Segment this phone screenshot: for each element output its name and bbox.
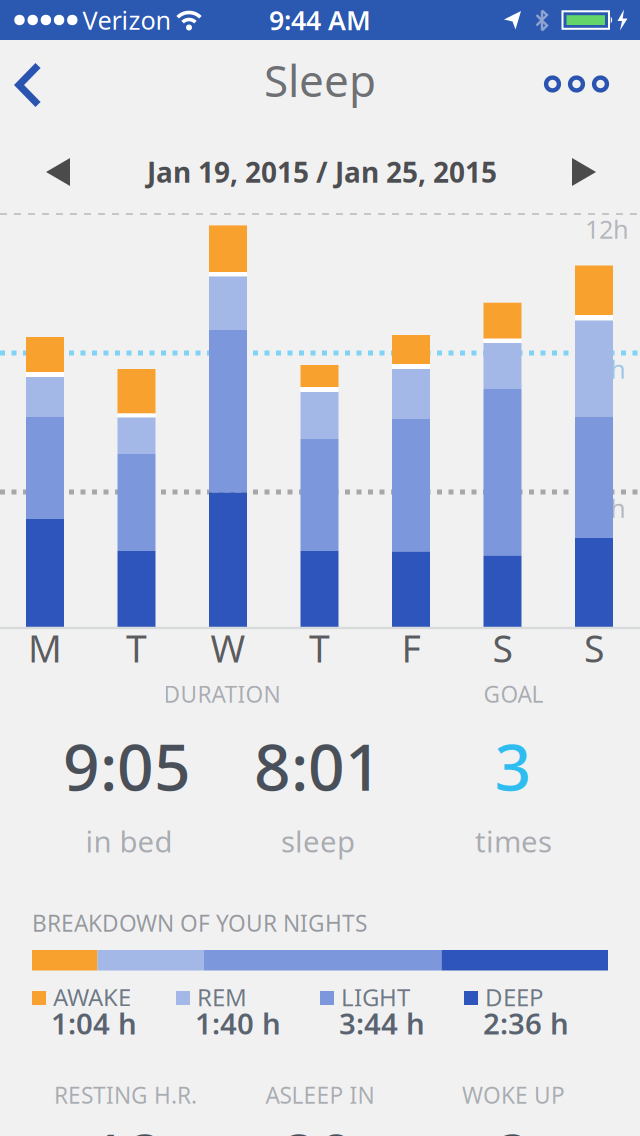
staticText: Jan 19, 2015 / Jan 25, 2015 — [147, 153, 497, 191]
staticText: T — [126, 623, 147, 673]
staticText: 2:36 h — [483, 1003, 569, 1042]
staticText: 8:01 — [254, 723, 382, 808]
staticText: S — [584, 623, 604, 673]
staticText: LIGHT — [341, 981, 410, 1013]
staticText: 3:44 h — [339, 1003, 425, 1042]
staticText: DEEP — [485, 981, 544, 1013]
button[interactable]: Next week — [571, 158, 597, 186]
staticText: Sleep — [264, 51, 376, 109]
staticText: W — [210, 623, 245, 673]
staticText: AWAKE — [53, 981, 131, 1013]
button[interactable]: More — [536, 67, 616, 101]
staticText: Verizon — [82, 3, 171, 37]
staticText: sleep — [281, 821, 355, 860]
staticText: DURATION — [163, 679, 280, 709]
staticText: 20 — [281, 1113, 355, 1136]
staticText: GOAL — [483, 679, 543, 709]
staticText: in bed — [85, 821, 172, 860]
staticText: 1:40 h — [195, 1003, 281, 1042]
staticText: 9:05 — [63, 723, 191, 808]
staticText: 12h — [585, 212, 629, 246]
staticText: 8h — [596, 352, 626, 386]
staticText: 2 — [494, 1113, 531, 1136]
staticText: BREAKDOWN OF YOUR NIGHTS — [32, 908, 367, 938]
staticText: T — [309, 623, 330, 673]
button[interactable]: Previous week — [45, 158, 71, 186]
staticText: 3 — [494, 723, 531, 808]
staticText: M — [28, 623, 62, 673]
staticText: 1:04 h — [51, 1003, 137, 1042]
staticText: 4h — [596, 491, 626, 525]
staticText: WOKE UP — [462, 1080, 565, 1110]
staticText: RESTING H.R. — [54, 1080, 197, 1110]
staticText: S — [492, 623, 512, 673]
staticText: F — [401, 623, 420, 673]
button[interactable]: Back — [0, 56, 56, 112]
staticText: REM — [197, 981, 247, 1013]
staticText: 12 — [90, 1113, 164, 1136]
staticText: times — [475, 821, 552, 860]
staticText: ASLEEP IN — [265, 1080, 374, 1110]
staticText: 9:44 AM — [269, 2, 371, 38]
